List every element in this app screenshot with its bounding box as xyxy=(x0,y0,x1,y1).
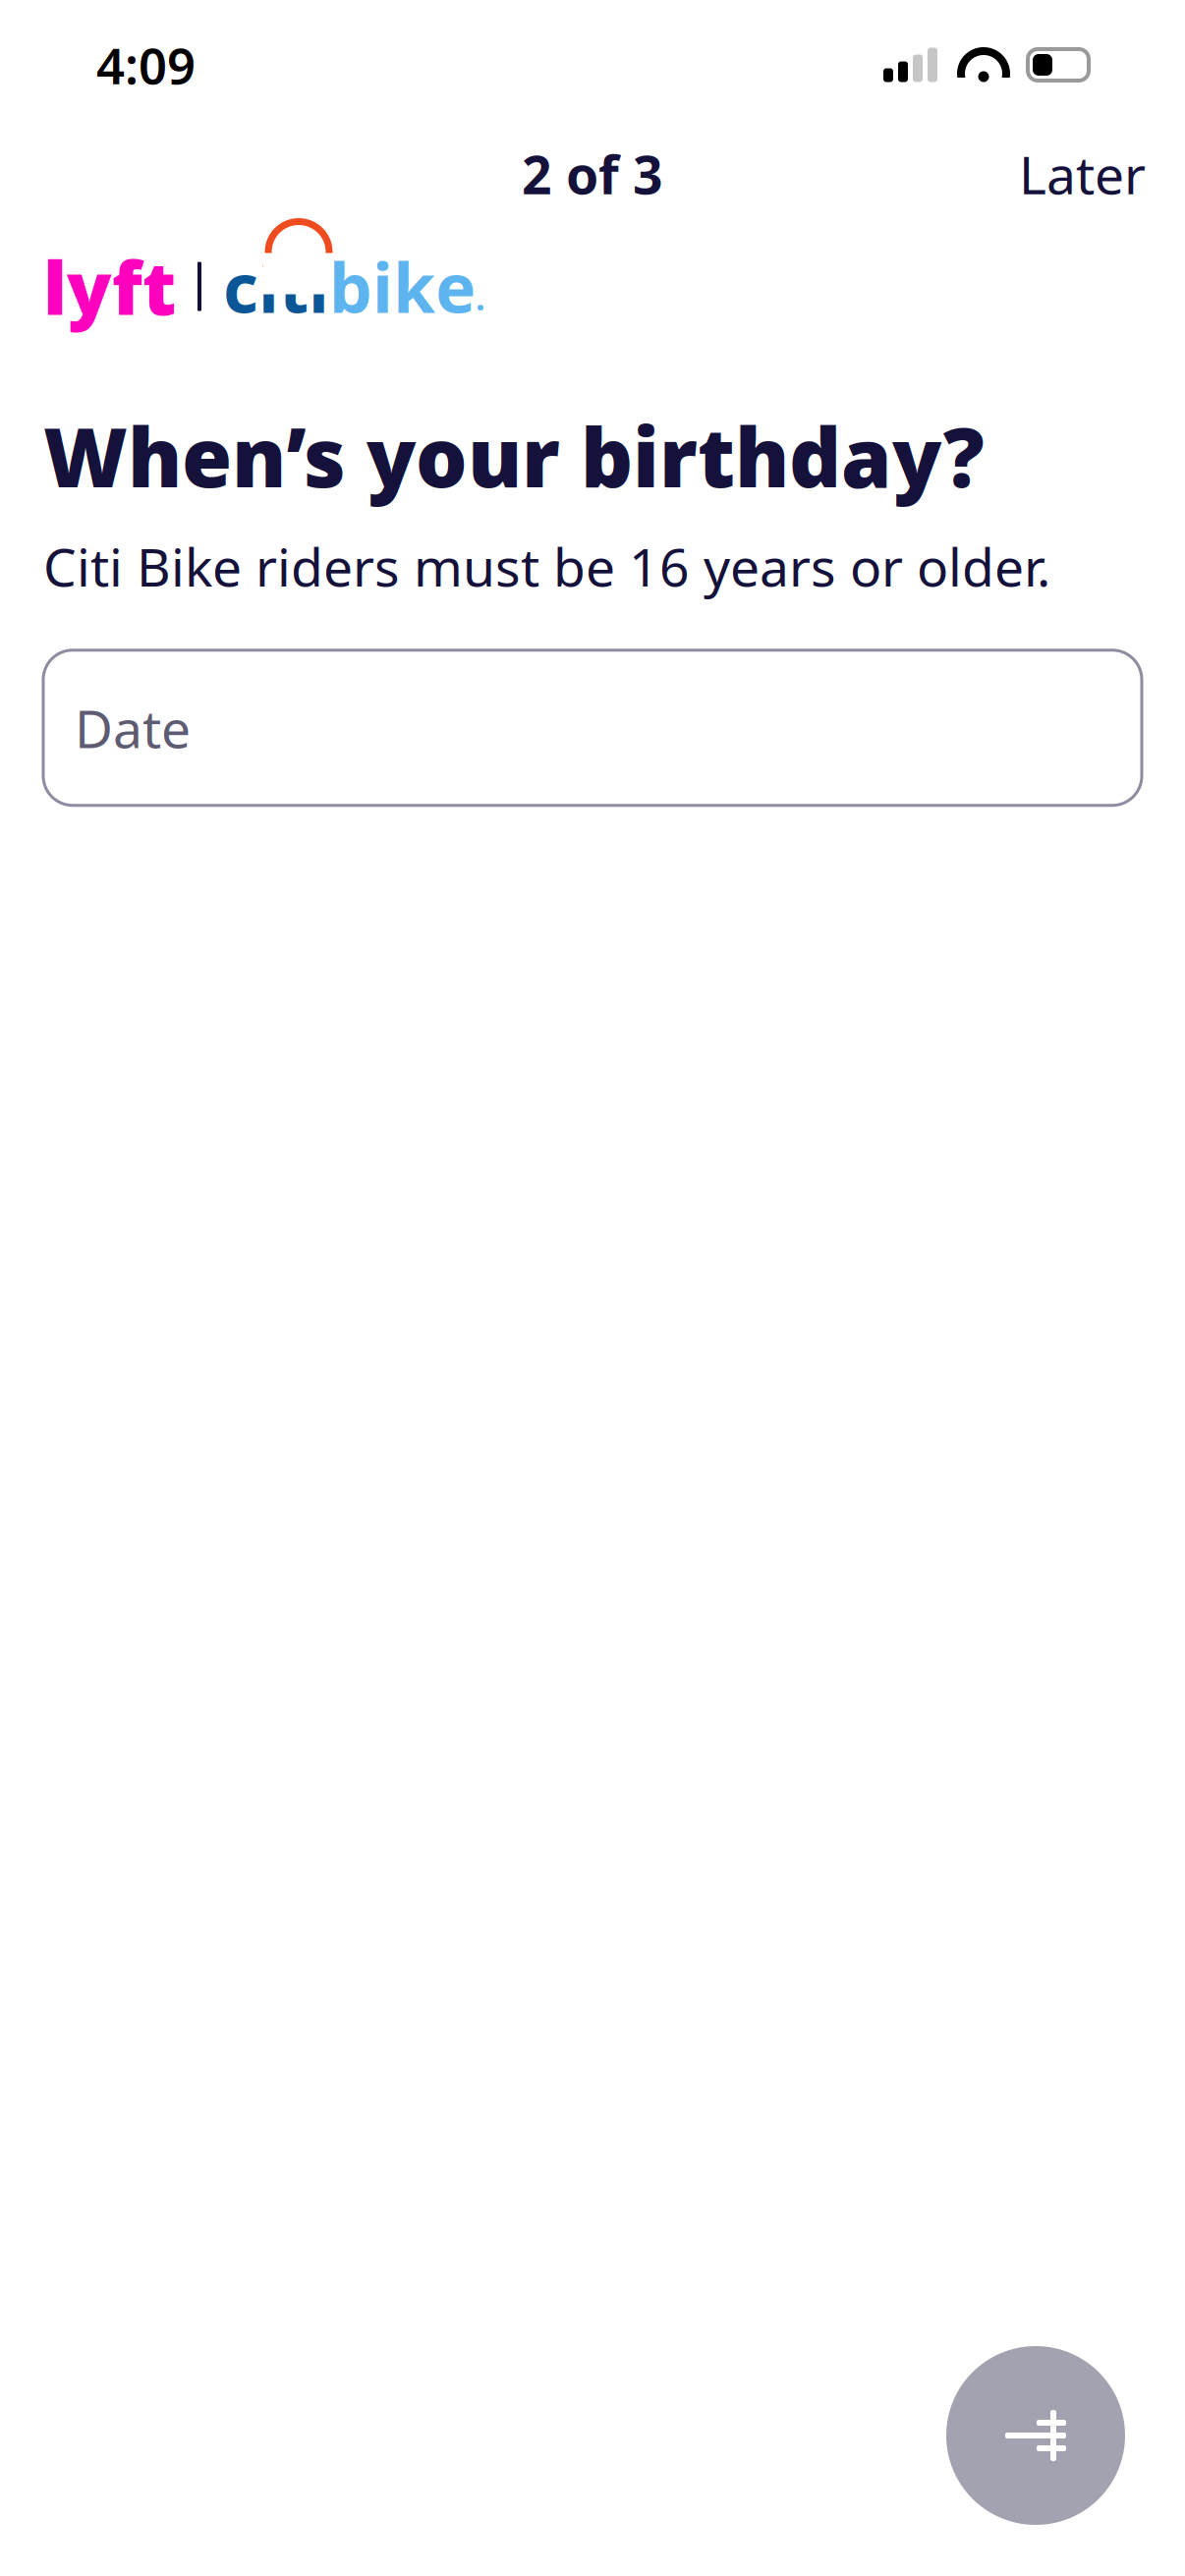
staticText: 4:09 xyxy=(96,32,196,98)
button[interactable]: Date xyxy=(43,650,1142,805)
staticText: citi xyxy=(223,241,329,332)
staticText: Date xyxy=(75,693,191,762)
staticText: Citi Bike riders must be 16 years or old… xyxy=(43,531,1050,601)
staticText: When’s your birthday? xyxy=(43,402,985,510)
staticText: lyft xyxy=(43,238,176,335)
button[interactable]: Continue xyxy=(946,2346,1125,2525)
staticText: Later xyxy=(1019,139,1146,209)
staticText: bike xyxy=(329,241,476,332)
staticText: . xyxy=(476,275,485,320)
button[interactable]: Later xyxy=(995,125,1169,222)
staticText: 2 of 3 xyxy=(522,139,663,209)
